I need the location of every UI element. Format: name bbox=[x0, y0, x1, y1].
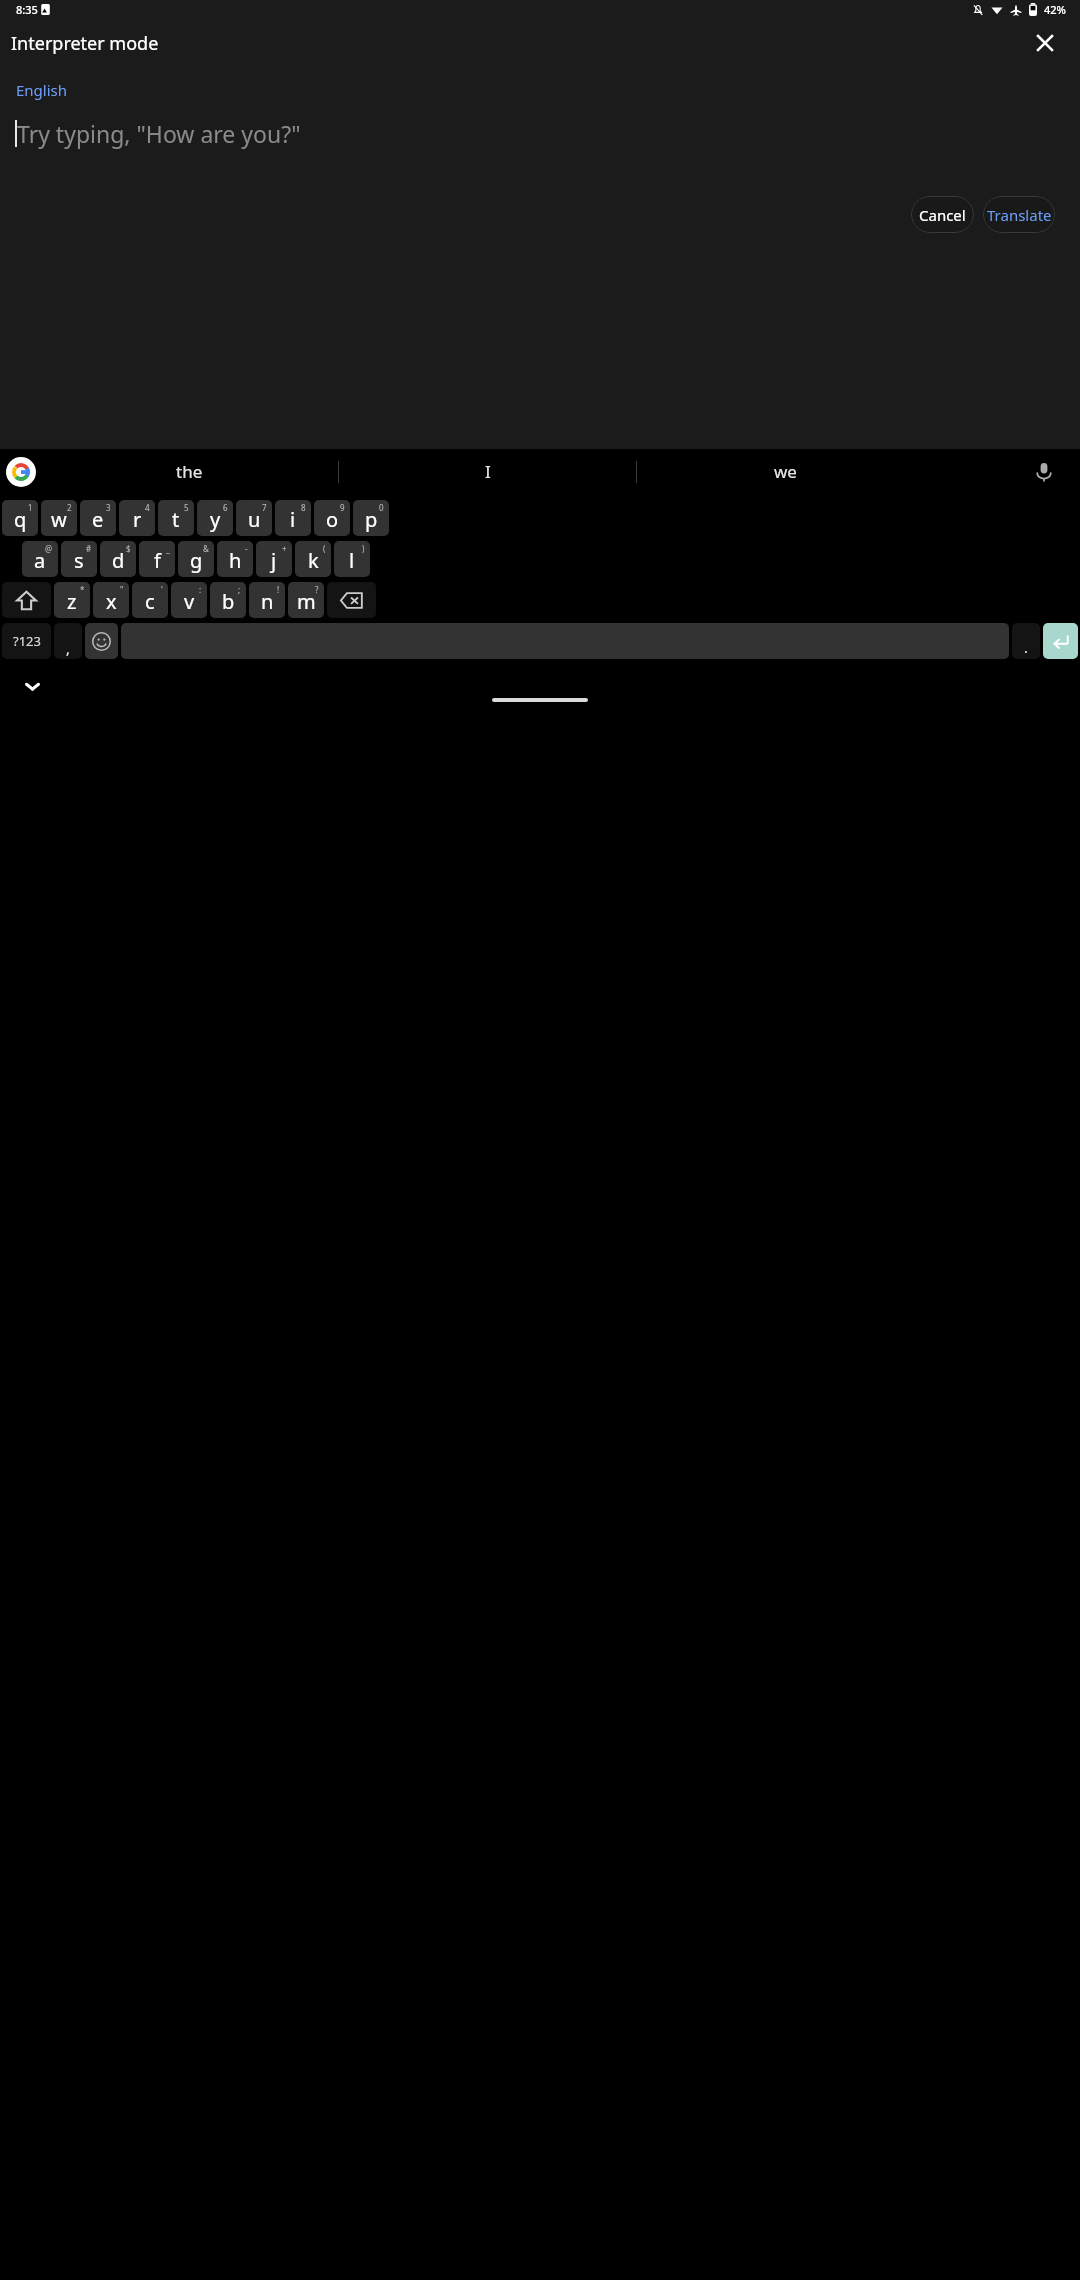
staticText: 7 bbox=[262, 502, 267, 513]
button[interactable]: 7 bbox=[236, 500, 272, 536]
staticText: c bbox=[145, 588, 155, 615]
button[interactable]: Google bbox=[6, 457, 36, 487]
button[interactable]: 3 bbox=[80, 500, 116, 536]
button[interactable]: @ bbox=[22, 541, 58, 577]
staticText: & bbox=[203, 543, 209, 554]
staticText: ! bbox=[277, 584, 280, 595]
staticText: $ bbox=[126, 543, 131, 554]
button[interactable]: : bbox=[171, 582, 207, 618]
button[interactable]: 1 bbox=[2, 500, 38, 536]
staticText: 1 bbox=[28, 502, 33, 513]
staticText: l bbox=[349, 547, 355, 574]
button[interactable]: # bbox=[61, 541, 97, 577]
staticText: + bbox=[282, 543, 287, 554]
button[interactable]: * bbox=[54, 582, 90, 618]
button[interactable]: Emoji bbox=[85, 623, 118, 659]
button[interactable]: Try typing, "How are you?" bbox=[15, 112, 1064, 154]
staticText: a bbox=[34, 547, 46, 574]
staticText: 4 bbox=[145, 502, 150, 513]
staticText: x bbox=[106, 588, 117, 615]
staticText: g bbox=[190, 547, 203, 574]
staticText: Cancel bbox=[919, 205, 966, 225]
staticText: ; bbox=[238, 584, 241, 595]
staticText: ? bbox=[315, 584, 319, 595]
staticText: 8:35 bbox=[16, 2, 38, 17]
button[interactable]: , bbox=[54, 623, 82, 659]
button[interactable]: Close bbox=[1027, 25, 1063, 61]
button[interactable]: the bbox=[40, 449, 338, 494]
staticText: o bbox=[326, 506, 339, 533]
button[interactable]: I bbox=[339, 449, 636, 494]
button[interactable]: 6 bbox=[197, 500, 233, 536]
button[interactable]: 0 bbox=[353, 500, 389, 536]
staticText: ' bbox=[161, 584, 163, 595]
staticText: 9 bbox=[340, 502, 345, 513]
button[interactable]: 2 bbox=[41, 500, 77, 536]
staticText: u bbox=[248, 506, 261, 533]
staticText: Translate bbox=[987, 205, 1052, 225]
staticText: # bbox=[86, 543, 92, 554]
staticText: I bbox=[485, 460, 491, 483]
button[interactable]: ? bbox=[288, 582, 324, 618]
staticText: 5 bbox=[184, 502, 189, 513]
button[interactable]: English bbox=[15, 78, 69, 102]
button[interactable]: 4 bbox=[119, 500, 155, 536]
staticText: r bbox=[133, 506, 142, 533]
staticText: j bbox=[271, 547, 277, 574]
staticText: " bbox=[120, 584, 124, 595]
staticText: v bbox=[184, 588, 195, 615]
staticText: k bbox=[308, 547, 319, 574]
staticText: Try typing, "How are you?" bbox=[17, 118, 301, 149]
button[interactable]: Enter bbox=[1043, 623, 1078, 659]
button[interactable]: + bbox=[256, 541, 292, 577]
staticText: s bbox=[74, 547, 84, 574]
button[interactable]: _ bbox=[139, 541, 175, 577]
staticText: e bbox=[92, 506, 104, 533]
button[interactable]: . bbox=[1012, 623, 1040, 659]
staticText: we bbox=[774, 460, 797, 483]
button[interactable]: ( bbox=[295, 541, 331, 577]
button[interactable]: Voice input bbox=[1026, 454, 1062, 490]
staticText: 0 bbox=[379, 502, 384, 513]
button[interactable]: ) bbox=[334, 541, 370, 577]
staticText: ) bbox=[362, 543, 365, 554]
staticText: t bbox=[172, 506, 180, 533]
button[interactable]: 8 bbox=[275, 500, 311, 536]
staticText: ( bbox=[323, 543, 326, 554]
staticText: i bbox=[290, 506, 296, 533]
staticText: q bbox=[14, 506, 27, 533]
staticText: p bbox=[365, 506, 378, 533]
staticText: : bbox=[199, 584, 202, 595]
button[interactable]: $ bbox=[100, 541, 136, 577]
button[interactable]: we bbox=[637, 449, 934, 494]
button[interactable]: - bbox=[217, 541, 253, 577]
staticText: 3 bbox=[106, 502, 111, 513]
staticText: w bbox=[51, 506, 67, 533]
staticText: m bbox=[297, 588, 316, 615]
button[interactable]: Translate bbox=[983, 196, 1055, 233]
staticText: , bbox=[66, 639, 70, 658]
staticText: the bbox=[176, 460, 203, 483]
button[interactable]: Backspace bbox=[327, 582, 376, 618]
button[interactable]: & bbox=[178, 541, 214, 577]
button[interactable]: ?123 bbox=[2, 623, 51, 659]
staticText: - bbox=[245, 543, 248, 554]
staticText: d bbox=[112, 547, 125, 574]
button[interactable]: ; bbox=[210, 582, 246, 618]
button[interactable]: ! bbox=[249, 582, 285, 618]
staticText: @ bbox=[45, 543, 53, 554]
staticText: 8 bbox=[301, 502, 306, 513]
button[interactable]: ' bbox=[132, 582, 168, 618]
staticText: y bbox=[210, 506, 221, 533]
button[interactable]: " bbox=[93, 582, 129, 618]
staticText: h bbox=[229, 547, 242, 574]
button[interactable]: Hide keyboard bbox=[14, 668, 50, 704]
staticText: _ bbox=[166, 543, 170, 554]
button[interactable]: 5 bbox=[158, 500, 194, 536]
button[interactable]: 9 bbox=[314, 500, 350, 536]
staticText: 42% bbox=[1044, 2, 1066, 17]
button[interactable]: Cancel bbox=[911, 196, 974, 233]
staticText: f bbox=[154, 547, 161, 574]
button[interactable]: Shift bbox=[2, 582, 51, 618]
